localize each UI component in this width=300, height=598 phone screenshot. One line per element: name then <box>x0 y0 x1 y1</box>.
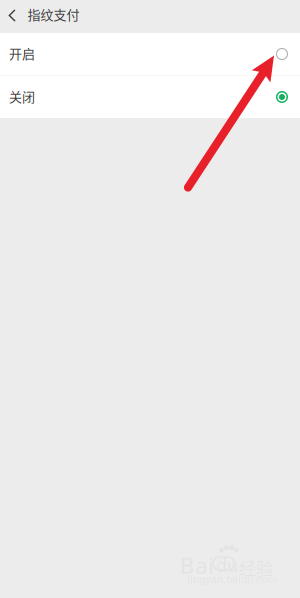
button[interactable]: 关闭 <box>0 76 300 118</box>
button[interactable]: Back <box>0 0 21 31</box>
button[interactable]: 开启 <box>0 33 300 75</box>
staticText: 开启 <box>9 43 35 62</box>
staticText: 指纹支付 <box>27 4 79 23</box>
staticText: 关闭 <box>9 86 35 105</box>
staticText: 经验 <box>239 555 273 580</box>
staticText: du <box>216 556 238 576</box>
staticText: Bai <box>180 554 214 579</box>
